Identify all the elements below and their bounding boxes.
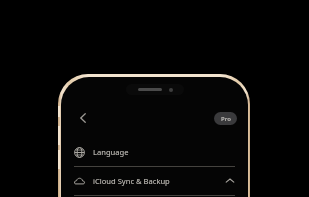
staticText: iCloud Sync & Backup: [93, 176, 170, 186]
button[interactable]: Back: [73, 108, 93, 128]
button[interactable]: Pro: [214, 112, 237, 125]
staticText: Language: [93, 147, 129, 157]
staticText: Pro: [221, 115, 231, 123]
button[interactable]: Language: [61, 138, 248, 166]
button[interactable]: iCloud Sync & Backup: [61, 167, 248, 195]
